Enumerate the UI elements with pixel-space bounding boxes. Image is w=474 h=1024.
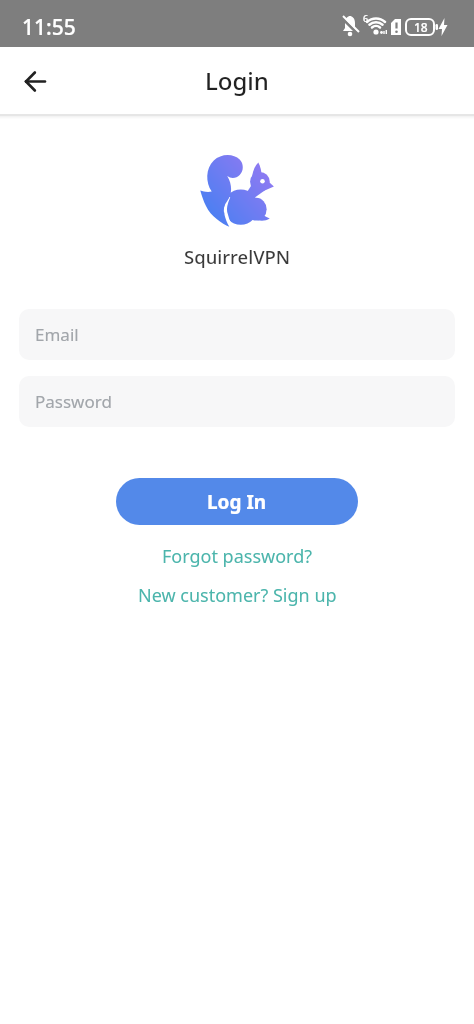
button[interactable] — [14, 60, 56, 102]
staticText: 11:55 — [22, 13, 76, 42]
staticText: 6 — [363, 12, 369, 24]
button[interactable]: New customer? Sign up — [138, 583, 337, 608]
staticText: Email — [35, 323, 79, 346]
staticText: SquirrelVPN — [184, 244, 291, 269]
button[interactable]: Forgot password? — [162, 544, 313, 569]
button[interactable]: Email — [19, 309, 455, 360]
button[interactable]: Password — [19, 376, 455, 427]
button[interactable]: Log In — [116, 478, 358, 525]
staticText: Login — [205, 64, 269, 97]
staticText: Password — [35, 390, 112, 413]
staticText: Forgot password? — [162, 544, 313, 569]
staticText: 18 — [414, 19, 428, 35]
staticText: Log In — [207, 489, 267, 515]
staticText: New customer? Sign up — [138, 583, 337, 608]
